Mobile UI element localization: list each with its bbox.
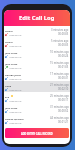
button[interactable]: Edit Call Log [4,10,70,26]
staticText: 25 minutes ago [50,94,69,98]
button[interactable]: NOKIA [4,26,70,37]
staticText: Osman Ibrahim [5,117,24,120]
staticText: +90534218 [9,55,22,58]
other: Outgoing call [5,66,8,69]
button[interactable]: George Jamie [4,70,70,81]
staticText: 00:00:52 [58,109,69,113]
staticText: +90534218 [9,66,22,69]
staticText: 00:00:05 [58,32,69,36]
staticText: NOKIA [5,40,14,43]
staticText: 00:02:10 [58,87,69,91]
staticText: +90534218 [9,44,22,47]
other: Incoming call [5,55,8,58]
staticText: +90534218 [9,77,22,80]
button[interactable]: Anna [4,81,70,92]
staticText: 17 minutes ago [50,72,69,76]
button[interactable]: Eva [4,92,70,103]
button[interactable]: ADD ENTRY CALL RECORD [5,128,69,138]
other: Incoming call [5,110,8,113]
staticText: +90534218 [9,88,22,91]
staticText: +90534218 [9,110,22,113]
staticText: George Jamie [5,73,21,76]
other: Missed call [5,44,8,47]
staticText: +90534218 [9,99,22,102]
staticText: +90534218 [9,121,22,124]
staticText: 15 minutes ago [50,61,69,65]
button[interactable]: NOKIA [4,37,70,48]
staticText: 00:00:17 [58,98,69,102]
staticText: John Snow [5,106,18,109]
staticText: Eva [5,95,10,98]
other: Incoming call [5,99,8,102]
staticText: 00:00:31 [58,76,69,80]
button[interactable]: John Snow [4,103,70,114]
staticText: Anna [5,84,12,87]
staticText: 00:00:05 [58,43,69,47]
button[interactable]: John Snow [4,48,70,59]
staticText: ADD ENTRY CALL RECORD [21,132,53,135]
staticText: 31 minutes ago [50,105,69,109]
staticText: 3 minutes ago [51,28,69,32]
other: Incoming call [5,121,8,124]
other: Missed call [5,33,8,36]
button[interactable]: Osman Ibrahim [4,114,70,125]
staticText: NOKIA [5,29,14,32]
staticText: John Snow [5,62,18,65]
other: Incoming call [5,88,8,91]
staticText: 00:01:21 [58,120,69,124]
other: Incoming call [5,77,8,80]
staticText: John Snow [5,51,18,54]
staticText: +90534218 [9,33,22,36]
staticText: 5 minutes ago [51,39,69,43]
staticText: 00:01:05 [58,65,69,69]
staticText: 44 minutes ago [50,116,69,120]
staticText: 00:00:24 [58,54,69,58]
staticText: Edit Call Log [19,14,55,22]
button[interactable]: John Snow [4,59,70,70]
staticText: 10 minutes ago [50,50,69,54]
staticText: 21 minutes ago [50,83,69,87]
